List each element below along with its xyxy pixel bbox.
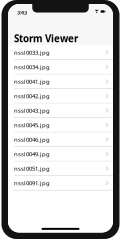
button[interactable]: nssl0051.jpg bbox=[8, 161, 113, 176]
staticText: Storm Viewer bbox=[14, 32, 78, 45]
button[interactable]: nssl0041.jpg bbox=[8, 74, 113, 89]
staticText: 3:43 bbox=[17, 9, 27, 16]
staticText: nssl0043.jpg bbox=[14, 106, 50, 114]
button[interactable]: nssl0049.jpg bbox=[8, 147, 113, 161]
button[interactable]: nssl0042.jpg bbox=[8, 89, 113, 103]
button[interactable]: nssl0091.jpg bbox=[8, 176, 113, 190]
staticText: nssl0041.jpg bbox=[14, 77, 50, 85]
button[interactable]: nssl0046.jpg bbox=[8, 132, 113, 147]
staticText: nssl0049.jpg bbox=[14, 150, 50, 158]
button[interactable]: nssl0045.jpg bbox=[8, 118, 113, 132]
staticText: nssl0051.jpg bbox=[14, 164, 50, 172]
button[interactable]: nssl0033.jpg bbox=[8, 45, 113, 60]
staticText: nssl0042.jpg bbox=[14, 92, 50, 100]
button[interactable]: nssl0034.jpg bbox=[8, 60, 113, 74]
staticText: nssl0045.jpg bbox=[14, 121, 50, 129]
button[interactable]: nssl0043.jpg bbox=[8, 103, 113, 118]
staticText: nssl0091.jpg bbox=[14, 179, 50, 187]
staticText: nssl0033.jpg bbox=[14, 48, 50, 56]
staticText: nssl0034.jpg bbox=[14, 63, 50, 71]
staticText: nssl0046.jpg bbox=[14, 135, 50, 143]
